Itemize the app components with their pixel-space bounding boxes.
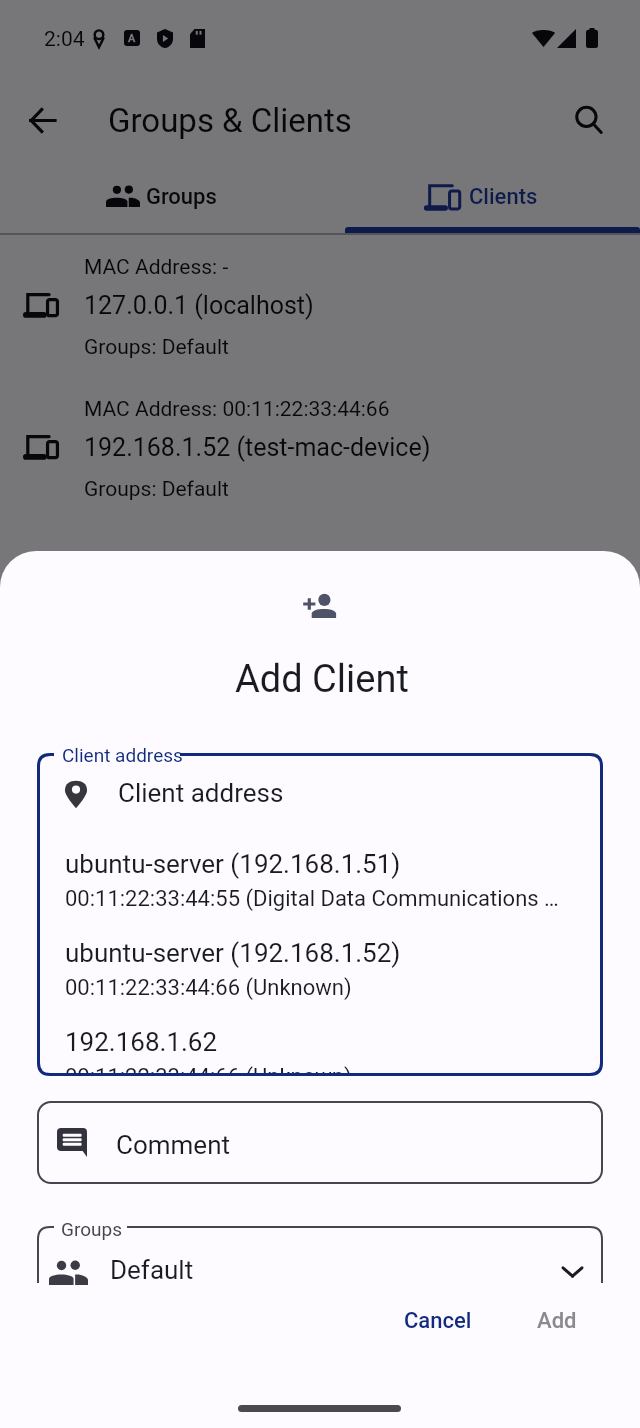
staticText: 2:04: [44, 27, 85, 52]
staticText: Groups: Default: [84, 477, 229, 502]
staticText: Groups: [61, 1218, 122, 1240]
staticText: Clients: [469, 184, 538, 210]
staticText: Groups & Clients: [108, 101, 352, 140]
staticText: 192.168.1.52 (test-mac-device): [84, 433, 431, 462]
staticText: Groups: Default: [84, 335, 229, 360]
button[interactable]: Back: [18, 96, 66, 144]
button[interactable]: Clients: [320, 170, 640, 233]
button[interactable]: Default: [37, 1226, 603, 1283]
staticText: Add: [537, 1308, 577, 1334]
staticText: 00:11:22:33:44:66 (Unknown): [65, 975, 352, 1001]
staticText: Client address: [62, 744, 183, 766]
staticText: Comment: [116, 1130, 231, 1160]
staticText: ubuntu-server (192.168.1.52): [65, 938, 401, 968]
staticText: A: [128, 32, 136, 45]
button[interactable]: Client address: [37, 753, 603, 1076]
staticText: Client address: [118, 778, 284, 808]
staticText: Default: [110, 1255, 194, 1285]
button[interactable]: Comment: [37, 1101, 603, 1184]
staticText: 00:11:22:33:44:66 (Unknown): [65, 1064, 352, 1076]
staticText: Add Client: [235, 657, 409, 702]
staticText: MAC Address: -: [84, 255, 229, 280]
staticText: ubuntu-server (192.168.1.51): [65, 849, 401, 879]
button[interactable]: Groups: [0, 170, 320, 233]
button[interactable]: Cancel: [384, 1296, 492, 1346]
staticText: Cancel: [404, 1308, 472, 1334]
staticText: MAC Address: 00:11:22:33:44:66: [84, 397, 390, 422]
staticText: 00:11:22:33:44:55 (Digital Data Communic…: [65, 886, 559, 912]
staticText: 127.0.0.1 (localhost): [84, 291, 314, 320]
button[interactable]: Search: [565, 96, 613, 144]
staticText: 192.168.1.62: [65, 1027, 218, 1057]
staticText: Groups: [146, 184, 217, 210]
button[interactable]: Add: [517, 1296, 597, 1346]
